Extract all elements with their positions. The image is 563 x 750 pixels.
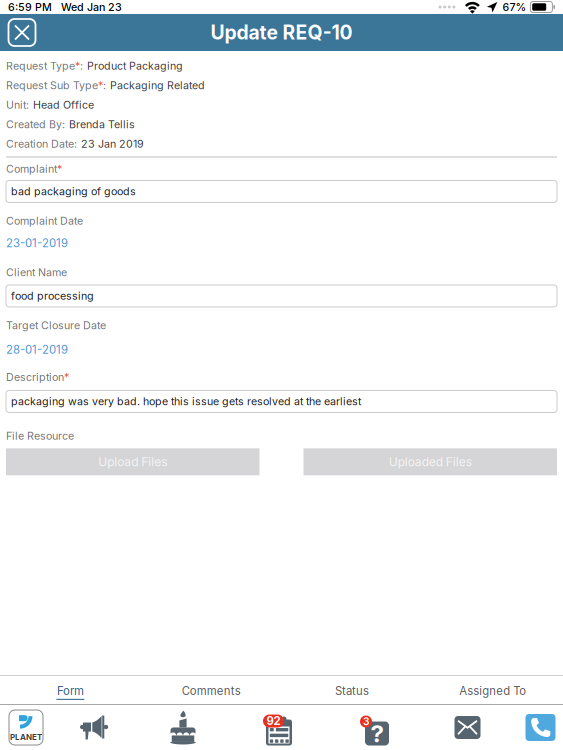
- staticText: :: [26, 98, 29, 111]
- staticText: Packaging Related: [110, 79, 205, 92]
- staticText: Request Type: [6, 59, 75, 72]
- staticText: :: [80, 59, 83, 72]
- staticText: *: [57, 162, 62, 175]
- staticText: :: [74, 137, 77, 150]
- staticText: *: [75, 59, 80, 72]
- staticText: 92: [266, 714, 280, 728]
- staticText: 6:59 PM: [8, 0, 52, 13]
- staticText: Description: [6, 371, 64, 383]
- staticText: ?: [370, 719, 383, 748]
- staticText: Target Closure Date: [6, 319, 106, 332]
- staticText: 23 Jan 2019: [81, 137, 144, 150]
- button[interactable]: Uploaded Files: [303, 448, 557, 475]
- button[interactable]: Mail: [422, 716, 513, 739]
- staticText: packaging was very bad. hope this issue …: [11, 395, 361, 408]
- staticText: Product Packaging: [87, 59, 183, 72]
- staticText: Status: [335, 684, 369, 698]
- staticText: 23-01-2019: [6, 236, 68, 250]
- staticText: Unit: [6, 98, 26, 111]
- staticText: Assigned To: [459, 684, 526, 698]
- staticText: PLANET: [10, 732, 42, 742]
- staticText: Complaint: [6, 162, 57, 175]
- staticText: Request Sub Type: [6, 79, 98, 92]
- staticText: Upload Files: [98, 455, 167, 469]
- staticText: Client Name: [6, 266, 67, 279]
- staticText: Update REQ-10: [210, 21, 352, 44]
- staticText: Uploaded Files: [389, 455, 472, 469]
- button[interactable]: Announcements: [52, 714, 136, 740]
- button[interactable]: Upload Files: [6, 448, 259, 475]
- button[interactable]: Assigned To: [422, 676, 563, 704]
- button[interactable]: Requests, 92 new: [230, 711, 322, 744]
- button[interactable]: Status: [281, 676, 422, 704]
- staticText: :: [62, 118, 65, 131]
- button[interactable]: Help, 3 new: [322, 712, 422, 743]
- staticText: Wed Jan 23: [61, 0, 122, 13]
- staticText: Created By: [6, 118, 62, 131]
- staticText: 3: [363, 715, 369, 728]
- staticText: :: [103, 79, 106, 92]
- staticText: File Resource: [6, 429, 74, 442]
- button[interactable]: Planet home: [0, 710, 52, 745]
- button[interactable]: Call: [513, 714, 563, 741]
- staticText: Form: [57, 684, 84, 698]
- staticText: *: [98, 79, 103, 92]
- staticText: Creation Date: [6, 137, 74, 150]
- button[interactable]: Birthdays: [136, 710, 230, 745]
- staticText: Head Office: [33, 98, 94, 111]
- button[interactable]: Comments: [141, 676, 282, 704]
- staticText: food processing: [11, 289, 94, 302]
- staticText: Comments: [182, 684, 241, 698]
- staticText: Brenda Tellis: [69, 118, 135, 131]
- staticText: 67%: [502, 0, 526, 13]
- staticText: 28-01-2019: [6, 343, 68, 356]
- staticText: *: [64, 371, 69, 383]
- staticText: bad packaging of goods: [11, 185, 136, 198]
- staticText: Complaint Date: [6, 214, 83, 227]
- button[interactable]: Form: [0, 676, 141, 704]
- button[interactable]: Close: [0, 16, 38, 48]
